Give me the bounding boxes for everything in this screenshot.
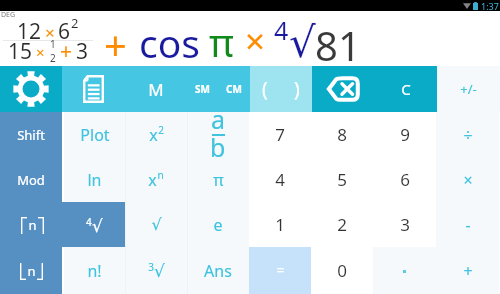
staticText: x	[149, 124, 158, 146]
staticText: 8	[337, 123, 347, 146]
button[interactable]: Settings	[0, 66, 62, 112]
button[interactable]: ×	[436, 157, 499, 202]
button[interactable]: n	[0, 247, 62, 294]
button[interactable]: (	[250, 66, 312, 112]
staticText: 2	[71, 14, 79, 32]
staticText: +	[60, 37, 73, 66]
staticText: e	[213, 214, 223, 236]
staticText: 81	[315, 18, 361, 62]
button[interactable]: Ans	[187, 247, 249, 294]
button[interactable]: 9	[373, 112, 436, 157]
staticText: 6	[400, 168, 410, 191]
button[interactable]: 4	[249, 157, 311, 202]
staticText: 6	[58, 17, 71, 46]
button[interactable]: CM	[218, 66, 250, 112]
button[interactable]: M	[125, 66, 187, 112]
button[interactable]: 3	[125, 247, 187, 294]
staticText: 9	[400, 123, 410, 146]
button[interactable]: 8	[311, 112, 373, 157]
staticText: n	[27, 262, 36, 280]
staticText: 7	[275, 123, 285, 146]
staticText: +	[104, 17, 127, 65]
staticText: cos	[139, 16, 200, 64]
button[interactable]: C	[374, 66, 437, 112]
staticText: 4	[274, 13, 289, 47]
button[interactable]	[373, 247, 436, 294]
staticText: √	[289, 18, 316, 62]
staticText: n!	[87, 260, 102, 282]
button[interactable]: +/-	[437, 66, 500, 112]
staticText: ÷	[463, 124, 473, 146]
staticText: ×	[36, 42, 45, 62]
staticText: n	[157, 168, 164, 182]
staticText: ×	[45, 21, 55, 44]
staticText: +	[463, 260, 473, 282]
staticText: ×	[245, 17, 266, 65]
button[interactable]: √	[125, 202, 187, 247]
button[interactable]: =	[249, 247, 311, 294]
button[interactable]: ln	[64, 157, 125, 202]
staticText: √	[92, 216, 103, 236]
staticText: 2	[337, 213, 347, 236]
staticText: -	[465, 214, 471, 236]
button[interactable]: x	[125, 112, 187, 157]
staticText: SM	[195, 82, 210, 96]
staticText: √	[151, 215, 162, 234]
staticText: =	[276, 260, 285, 279]
staticText: 3	[400, 213, 410, 236]
button[interactable]: n!	[64, 247, 125, 294]
button[interactable]: x	[125, 157, 187, 202]
staticText: 2	[158, 123, 164, 137]
staticText: ×	[463, 169, 473, 191]
staticText: π	[213, 169, 224, 191]
staticText: π	[209, 16, 234, 64]
staticText: DEG	[1, 10, 16, 20]
button[interactable]: 2	[311, 202, 373, 247]
staticText: Plot	[80, 124, 110, 146]
staticText: 1:37	[481, 0, 499, 11]
button[interactable]: Backspace	[312, 66, 374, 112]
staticText: )	[294, 76, 300, 102]
staticText: Mod	[17, 171, 45, 189]
staticText: 4	[86, 215, 92, 229]
button[interactable]: 7	[249, 112, 311, 157]
button[interactable]: Mod	[0, 157, 62, 202]
button[interactable]: Shift	[0, 112, 62, 157]
staticText: 1	[275, 213, 285, 236]
button[interactable]: e	[187, 202, 249, 247]
button[interactable]: 4	[64, 202, 125, 247]
button[interactable]: π	[187, 157, 249, 202]
button[interactable]: History	[62, 66, 125, 112]
staticText: Ans	[204, 260, 232, 282]
staticText: 12	[17, 17, 42, 46]
staticText: 1	[50, 37, 56, 51]
staticText: M	[148, 78, 164, 101]
staticText: a	[211, 102, 226, 136]
button[interactable]: 3	[373, 202, 436, 247]
staticText: 15	[8, 37, 33, 66]
staticText: CM	[226, 82, 242, 96]
staticText: √	[154, 261, 165, 281]
staticText: 5	[337, 168, 347, 191]
staticText: Shift	[17, 126, 45, 144]
button[interactable]: ÷	[436, 112, 499, 157]
button[interactable]: Plot	[64, 112, 125, 157]
button[interactable]: SM	[187, 66, 218, 112]
staticText: x	[148, 169, 157, 191]
staticText: 3	[148, 260, 154, 274]
staticText: C	[401, 79, 411, 99]
staticText: ln	[87, 169, 102, 191]
button[interactable]: 0	[311, 247, 373, 294]
button[interactable]: 1	[249, 202, 311, 247]
button[interactable]: n	[0, 202, 64, 247]
staticText: 4	[275, 168, 285, 191]
staticText: 3	[76, 37, 89, 66]
button[interactable]: -	[436, 202, 499, 247]
staticText: +/-	[460, 80, 477, 98]
button[interactable]: +	[436, 247, 499, 294]
staticText: n	[28, 216, 37, 234]
button[interactable]: 6	[373, 157, 436, 202]
button[interactable]: a	[187, 112, 249, 157]
staticText: 0	[337, 259, 347, 282]
button[interactable]: 5	[311, 157, 373, 202]
